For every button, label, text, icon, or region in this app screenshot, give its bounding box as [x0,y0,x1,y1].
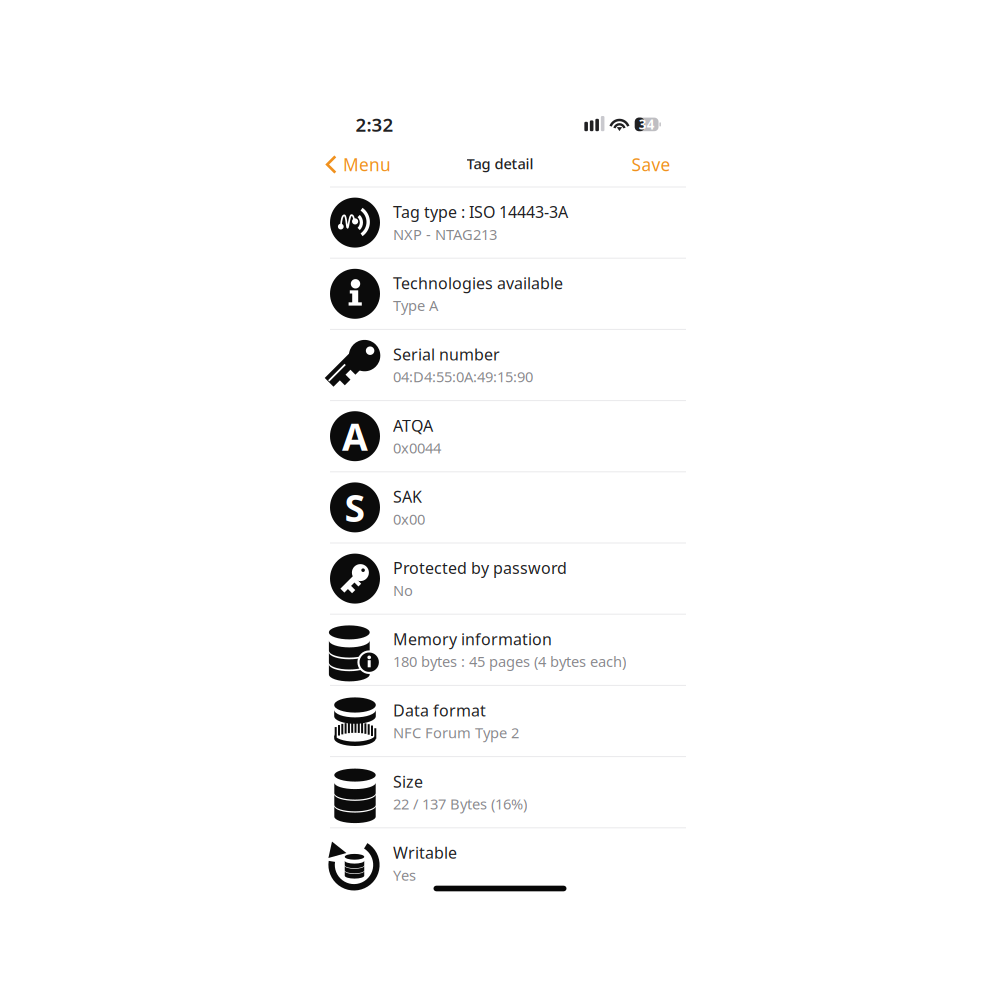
staticText: 34 [639,115,655,133]
staticText: Technologies available [393,272,563,294]
button[interactable]: Technologies available [330,259,686,329]
staticText: Yes [393,865,416,885]
staticText: 04:D4:55:0A:49:15:90 [393,367,533,386]
staticText: Serial number [393,344,500,365]
staticText: 2:32 [355,112,393,137]
staticText: 180 bytes : 45 pages (4 bytes each) [393,652,626,671]
staticText: Save [631,153,670,176]
staticText: S [344,483,365,532]
staticText: NXP - NTAG213 [393,224,497,244]
staticText: Protected by password [393,557,567,578]
button[interactable]: Protected by password [330,543,686,614]
staticText: SAK [393,486,422,507]
button[interactable]: S [330,472,686,542]
button[interactable]: Writable [330,828,686,898]
button[interactable]: Data format [330,686,686,756]
staticText: Size [393,771,423,792]
staticText: Writable [393,842,457,863]
staticText: Tag type : ISO 14443-3A [393,201,568,222]
staticText: 0x00 [393,509,425,529]
staticText: A [342,411,368,461]
button[interactable]: Tag type : ISO 14443-3A [330,187,686,258]
button[interactable]: Save [631,146,670,183]
staticText: Memory information [393,628,552,650]
button[interactable]: Menu [325,146,391,183]
button[interactable]: Serial number [330,330,686,400]
staticText: NFC Forum Type 2 [393,723,519,742]
staticText: 0x0044 [393,438,441,458]
staticText: Type A [393,296,438,315]
button[interactable]: Memory information [330,615,686,685]
button[interactable]: A [330,401,686,471]
staticText: Data format [393,700,486,721]
button[interactable]: Size [330,757,686,827]
staticText: 22 / 137 Bytes (16%) [393,794,527,814]
staticText: ATQA [393,415,433,436]
staticText: Tag detail [466,154,533,173]
staticText: Menu [343,153,391,176]
staticText: No [393,580,413,600]
